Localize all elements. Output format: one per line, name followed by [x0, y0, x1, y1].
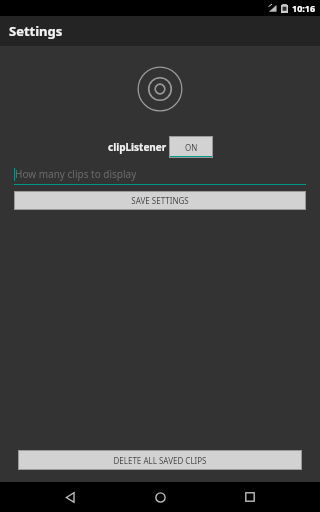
button[interactable]: How many clips to display: [14, 167, 306, 185]
staticText: DELETE ALL SAVED CLIPS: [113, 455, 207, 466]
button[interactable]: Home: [140, 482, 180, 512]
staticText: SAVE SETTINGS: [131, 195, 189, 206]
button[interactable]: Recent apps: [230, 482, 270, 512]
staticText: ON: [185, 142, 198, 153]
button[interactable]: ON: [169, 136, 213, 158]
staticText: Settings: [9, 22, 63, 40]
staticText: clipListener: [108, 140, 167, 154]
button[interactable]: SAVE SETTINGS: [14, 191, 306, 210]
staticText: 10:16: [292, 2, 316, 14]
staticText: How many clips to display: [15, 167, 137, 181]
button[interactable]: Back: [50, 482, 90, 512]
other: App logo: [137, 66, 183, 112]
button[interactable]: DELETE ALL SAVED CLIPS: [18, 450, 302, 470]
